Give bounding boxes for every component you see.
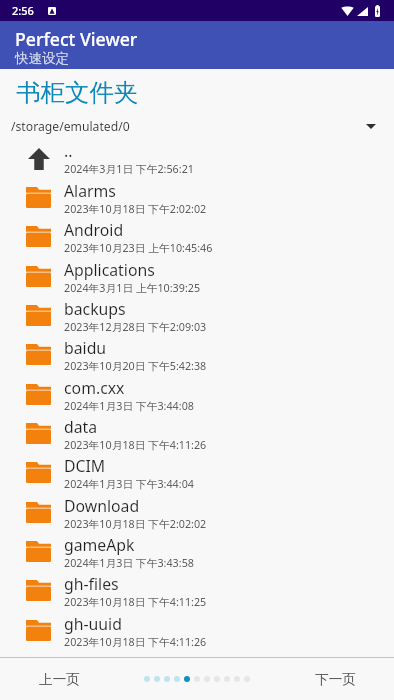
staticText: 2024年1月3日 下午3:43:58 [64, 556, 194, 571]
button[interactable]: Go to page 2 [154, 676, 160, 682]
staticText: 2023年10月20日 下午5:42:38 [64, 359, 207, 374]
staticText: 上一页 [39, 671, 80, 688]
staticText: com.cxx [64, 377, 125, 399]
button[interactable]: .. [0, 138, 394, 177]
staticText: gh-files [64, 573, 119, 595]
button[interactable]: Go to page 3 [164, 676, 170, 682]
staticText: 2:56 [12, 3, 34, 18]
staticText: 2024年1月3日 下午3:44:08 [64, 399, 194, 414]
button[interactable]: Applications [0, 257, 394, 296]
button[interactable]: com.cxx [0, 375, 394, 414]
button[interactable]: gameApk [0, 532, 394, 571]
staticText: /storage/emulated/0 [11, 118, 366, 135]
other: Choose folder [366, 124, 376, 129]
button[interactable]: gh-files [0, 571, 394, 610]
button[interactable]: Go to page 11 [244, 676, 250, 682]
staticText: 2023年10月18日 下午4:11:26 [64, 635, 207, 650]
staticText: .. [64, 140, 73, 162]
staticText: Alarms [64, 180, 116, 202]
staticText: baidu [64, 337, 107, 359]
button[interactable]: Go to page 10 [234, 676, 240, 682]
staticText: Download [64, 495, 140, 517]
button[interactable]: Go to page 7 [204, 676, 210, 682]
button[interactable]: Go to page 6 [194, 676, 200, 682]
staticText: 2023年10月18日 下午4:11:26 [64, 438, 207, 453]
button[interactable]: gh-uuid [0, 611, 394, 650]
button[interactable]: baidu [0, 335, 394, 374]
staticText: 2024年3月1日 上午10:39:25 [64, 281, 201, 296]
staticText: gh-uuid [64, 613, 122, 635]
button[interactable]: Go to page 8 [214, 676, 220, 682]
staticText: 2024年1月3日 下午3:44:04 [64, 477, 194, 492]
button[interactable]: Android [0, 217, 394, 256]
button[interactable]: Go to page 4 [174, 676, 180, 682]
staticText: data [64, 416, 98, 438]
button[interactable]: Download [0, 493, 394, 532]
button[interactable]: Current folder /storage/emulated/0 [0, 111, 394, 136]
staticText: 2023年10月18日 下午2:02:02 [64, 517, 207, 532]
button[interactable]: Go to page 9 [224, 676, 230, 682]
button[interactable]: Perfect Viewer [0, 21, 394, 69]
staticText: 2023年12月28日 下午2:09:03 [64, 320, 207, 335]
staticText: 快速设定 [15, 50, 69, 67]
staticText: gameApk [64, 534, 135, 556]
staticText: 2023年10月18日 下午4:11:25 [64, 595, 207, 610]
button[interactable]: DCIM [0, 453, 394, 492]
staticText: DCIM [64, 455, 106, 477]
staticText: backups [64, 298, 126, 320]
button[interactable]: Go to page 1 [144, 676, 150, 682]
button[interactable]: 上一页 [0, 658, 118, 700]
staticText: 下一页 [315, 671, 356, 688]
staticText: Perfect Viewer [15, 27, 138, 51]
button[interactable]: backups [0, 296, 394, 335]
button[interactable]: Alarms [0, 178, 394, 217]
staticText: Android [64, 219, 124, 241]
staticText: 2024年3月1日 下午2:56:21 [64, 162, 194, 177]
button[interactable]: data [0, 414, 394, 453]
staticText: 2023年10月18日 下午2:02:02 [64, 202, 207, 217]
staticText: 书柜文件夹 [16, 77, 139, 108]
button[interactable]: Go to page 5 [184, 676, 190, 682]
staticText: 2023年10月23日 上午10:45:46 [64, 241, 213, 256]
button[interactable]: 下一页 [276, 658, 394, 700]
staticText: Applications [64, 259, 155, 281]
